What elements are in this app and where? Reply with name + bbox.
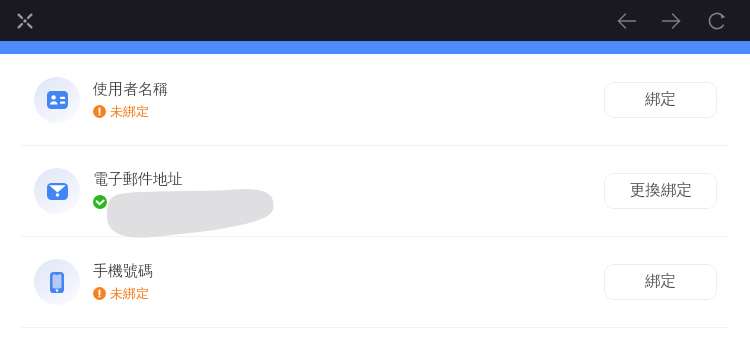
button[interactable]: Forward <box>657 7 685 35</box>
staticText: 電子郵件地址 <box>93 170 183 189</box>
button[interactable]: 使用者名稱 <box>0 54 750 145</box>
staticText: 未綁定 <box>110 285 149 301</box>
button[interactable]: Refresh <box>703 7 731 35</box>
staticText: 更換綁定 <box>630 180 692 200</box>
button[interactable]: 綁定 <box>604 264 717 300</box>
staticText: 使用者名稱 <box>93 80 168 99</box>
button[interactable]: 更換綁定 <box>604 173 717 209</box>
staticText: 手機號碼 <box>93 262 153 281</box>
staticText: 綁定 <box>645 271 676 291</box>
button[interactable]: 電子郵件地址 <box>0 145 750 236</box>
button[interactable]: 綁定 <box>604 82 717 118</box>
button[interactable]: 手機號碼 <box>0 236 750 327</box>
button[interactable]: Back <box>613 7 641 35</box>
button[interactable]: Close <box>11 7 39 35</box>
staticText: 未綁定 <box>110 103 149 119</box>
staticText: 綁定 <box>645 89 676 109</box>
staticText: xxxx@xxx.com <box>112 193 202 211</box>
